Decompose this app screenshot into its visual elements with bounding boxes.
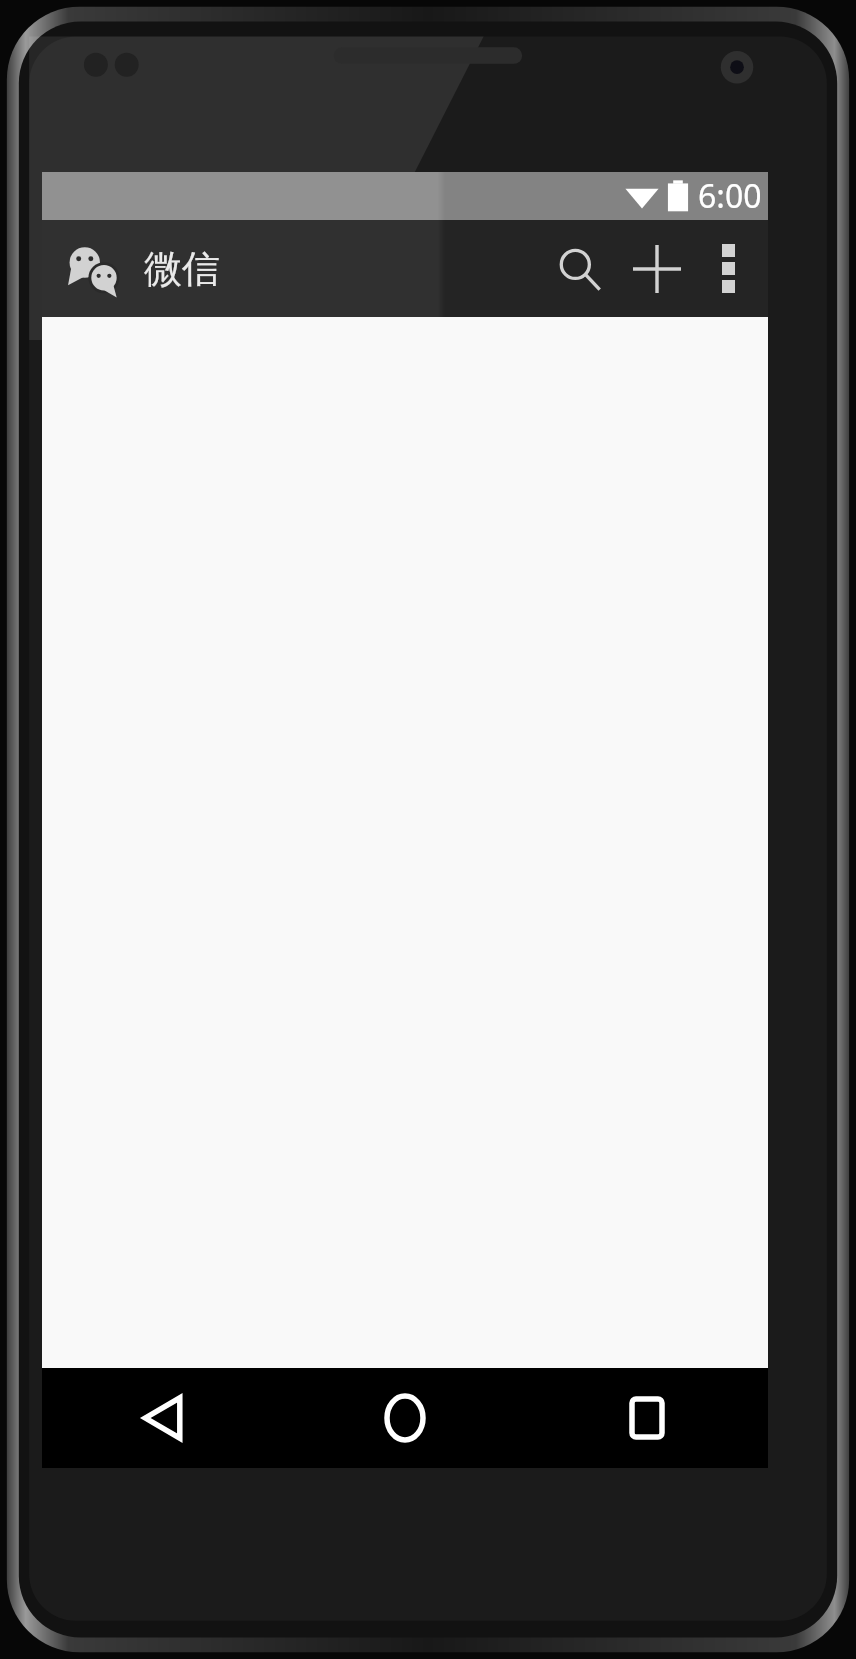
staticText: 6:00 (698, 174, 762, 218)
button[interactable]: Add (618, 220, 696, 317)
button[interactable]: Back (42, 1368, 284, 1468)
button[interactable]: Search (540, 220, 618, 317)
button[interactable]: More options (696, 220, 760, 317)
button[interactable]: Recent apps (526, 1368, 768, 1468)
staticText: 微信 (144, 245, 220, 293)
other: WeChat logo (64, 238, 126, 300)
button[interactable]: Home (284, 1368, 526, 1468)
